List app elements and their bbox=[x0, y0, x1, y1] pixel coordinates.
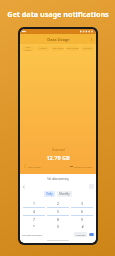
staticText: 6 bbox=[81, 209, 83, 214]
button[interactable]: # bbox=[71, 223, 93, 230]
button[interactable]: Daily bbox=[44, 191, 55, 197]
staticText: Get data usage notifications bbox=[7, 9, 109, 19]
button[interactable]: 6 bbox=[71, 208, 93, 215]
staticText: Monthly bbox=[59, 192, 70, 196]
staticText: 5 bbox=[57, 209, 59, 214]
staticText: 2.00 GB bbox=[76, 233, 85, 236]
staticText: 12.79 GB bbox=[46, 154, 70, 161]
button[interactable]: 2.00 GB bbox=[74, 232, 87, 237]
button[interactable]: Back bbox=[22, 185, 26, 189]
staticText: 9 bbox=[81, 217, 83, 222]
button[interactable]: 9 bbox=[71, 216, 93, 223]
button[interactable]: Set limit bbox=[81, 46, 94, 51]
button[interactable]: 4 bbox=[23, 208, 45, 215]
button[interactable]: * bbox=[23, 223, 45, 230]
staticText: Data used bbox=[52, 148, 65, 152]
button[interactable]: 5 bbox=[47, 208, 69, 215]
staticText: Mobile bbox=[39, 47, 47, 50]
staticText: 2 bbox=[57, 201, 59, 206]
staticText: 3 bbox=[81, 201, 83, 206]
staticText: 8 bbox=[57, 217, 59, 222]
staticText: # bbox=[81, 224, 84, 229]
button[interactable]: 7 bbox=[23, 216, 45, 223]
staticText: Set data warning bbox=[47, 177, 69, 181]
staticText: Data Usage bbox=[47, 37, 70, 42]
button[interactable]: 0 bbox=[47, 223, 69, 230]
button[interactable]: More options bbox=[89, 37, 94, 42]
staticText: Total usage bbox=[27, 165, 41, 168]
staticText: Wifi usage bbox=[52, 47, 64, 50]
button[interactable]: Wifi usage bbox=[51, 46, 64, 51]
staticText: Daily bbox=[46, 192, 53, 196]
staticText: APPS usage bbox=[22, 46, 34, 51]
button[interactable]: Data usage bbox=[66, 46, 79, 51]
button[interactable]: Mobile bbox=[36, 46, 49, 51]
button[interactable]: 3 bbox=[71, 200, 93, 207]
staticText: 1 bbox=[33, 201, 35, 206]
staticText: Weekly average bbox=[74, 165, 92, 168]
button[interactable]: Toggle data warning bbox=[89, 233, 94, 236]
staticText: Data usage bbox=[66, 47, 79, 50]
button[interactable]: 1 bbox=[23, 200, 45, 207]
staticText: 4 bbox=[33, 209, 35, 214]
staticText: 0 bbox=[57, 224, 59, 229]
button[interactable]: Monthly bbox=[57, 191, 72, 197]
staticText: * bbox=[33, 224, 35, 229]
button[interactable]: 8 bbox=[47, 216, 69, 223]
button[interactable]: APPS usage bbox=[22, 46, 34, 51]
button[interactable]: 2 bbox=[47, 200, 69, 207]
staticText: 7 bbox=[33, 217, 35, 222]
staticText: Set data warning bbox=[22, 233, 42, 236]
staticText: Set limit bbox=[83, 47, 92, 50]
